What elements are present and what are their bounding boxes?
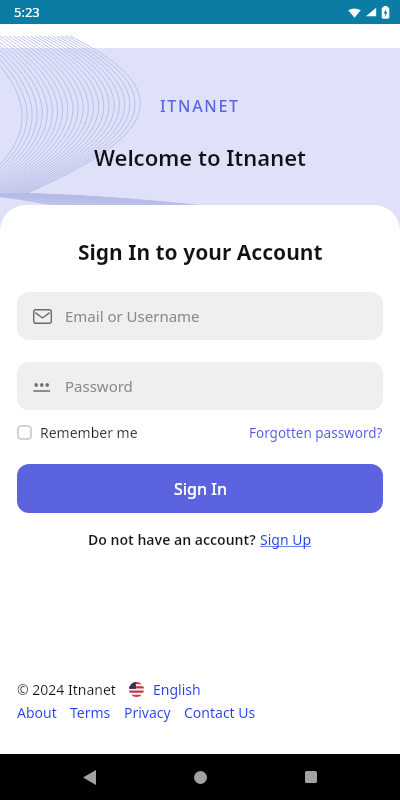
button[interactable]: English: [153, 680, 201, 699]
staticText: Sign In: [174, 478, 227, 500]
button[interactable]: Home: [178, 755, 222, 799]
button[interactable]: Password: [17, 362, 383, 410]
button[interactable]: Contact Us: [184, 703, 256, 722]
staticText: English: [153, 680, 201, 699]
button[interactable]: Sign Up: [260, 530, 312, 549]
staticText: ITNANET: [160, 95, 240, 117]
staticText: Email or Username: [65, 306, 200, 326]
staticText: Sign In to your Account: [78, 238, 323, 267]
button[interactable]: Sign In: [17, 464, 383, 513]
other: Language English: [129, 682, 144, 697]
button[interactable]: Email or Username: [17, 292, 383, 340]
button[interactable]: Remember me: [17, 423, 138, 442]
staticText: 5:23: [14, 3, 40, 21]
staticText: Sign Up: [260, 530, 312, 549]
button[interactable]: Privacy: [124, 703, 171, 722]
button[interactable]: Terms: [70, 703, 111, 722]
staticText: Privacy: [124, 703, 171, 722]
button[interactable]: Forgotten password?: [249, 424, 383, 442]
staticText: About: [17, 703, 57, 722]
staticText: Password: [65, 376, 133, 396]
button[interactable]: Recent apps: [289, 755, 333, 799]
staticText: Do not have an account?: [88, 530, 260, 549]
button[interactable]: About: [17, 703, 57, 722]
staticText: Terms: [70, 703, 111, 722]
staticText: Contact Us: [184, 703, 256, 722]
staticText: Remember me: [40, 423, 138, 442]
button[interactable]: Back: [67, 755, 111, 799]
staticText: Welcome to Itnanet: [94, 142, 306, 172]
staticText: Forgotten password?: [249, 424, 383, 442]
staticText: © 2024 Itnanet: [17, 680, 116, 699]
